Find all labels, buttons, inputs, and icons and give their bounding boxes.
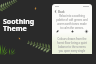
other: Back	[54, 10, 57, 13]
button[interactable]: Leaf	[55, 29, 60, 34]
button[interactable]: Back	[54, 9, 90, 14]
button[interactable]: Sun	[84, 29, 89, 34]
button[interactable]: Drop	[70, 29, 75, 34]
staticText: Colours drawn from the forest floor brin…	[56, 37, 88, 54]
staticText: Soothing Theme	[3, 17, 35, 34]
staticText: Relax into a soothing palette of soft gr…	[56, 14, 88, 30]
staticText: Back	[58, 10, 65, 14]
